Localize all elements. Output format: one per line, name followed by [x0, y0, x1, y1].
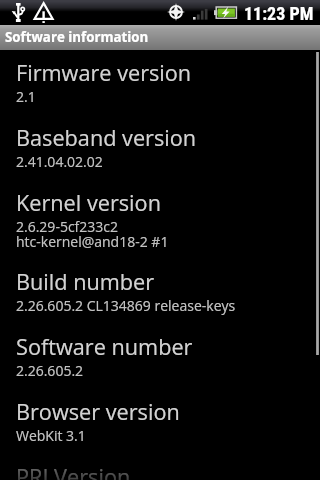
staticText: Baseband version [16, 123, 197, 152]
staticText: Build number [16, 267, 155, 296]
staticText: 11:23 PM [244, 3, 314, 24]
staticText: WebKit 3.1 [16, 429, 86, 444]
staticText: Firmware version [16, 58, 192, 87]
staticText: Browser version [16, 397, 180, 426]
other: USB connected [11, 3, 25, 22]
staticText: 2.26.605.2 CL134869 release-keys [16, 299, 236, 314]
staticText: 2.41.04.02.02 [16, 155, 103, 170]
other: Battery charging [214, 7, 237, 19]
other: Warning [34, 2, 54, 23]
other: Signal strength [193, 8, 208, 20]
button[interactable]: Build number [0, 267, 320, 332]
staticText: Software number [16, 332, 193, 361]
staticText: PRI Version [16, 462, 131, 480]
button[interactable]: Firmware version [0, 58, 320, 123]
other: GPS [167, 3, 185, 21]
staticText: Software information [5, 28, 149, 46]
button[interactable]: PRI Version [0, 462, 320, 480]
staticText: 2.1 [16, 90, 36, 105]
staticText: 2.6.29-5cf233c2 [16, 220, 119, 235]
staticText: Kernel version [16, 188, 161, 217]
staticText: htc-kernel@and18-2 #1 [16, 235, 169, 250]
button[interactable]: Software number [0, 332, 320, 397]
button[interactable]: Baseband version [0, 123, 320, 188]
button[interactable]: Kernel version [0, 188, 320, 267]
staticText: 2.26.605.2 [16, 364, 84, 379]
button[interactable]: Browser version [0, 397, 320, 462]
